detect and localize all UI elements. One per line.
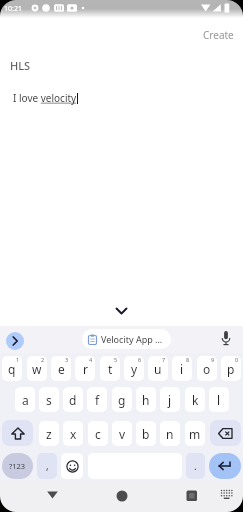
button[interactable]: u	[148, 356, 168, 381]
button[interactable]	[182, 487, 202, 505]
button[interactable]: q	[2, 356, 22, 381]
button[interactable]: Velocity App ...	[82, 329, 171, 349]
button[interactable]: l	[209, 387, 229, 412]
staticText: Create	[203, 28, 234, 42]
button[interactable]: r	[75, 356, 95, 381]
button[interactable]: o	[197, 356, 217, 381]
staticText: 8	[186, 356, 190, 363]
staticText: l	[217, 392, 221, 408]
button[interactable]: I love velocity	[13, 91, 77, 105]
staticText: f	[95, 392, 100, 408]
staticText: 7	[162, 356, 166, 363]
button[interactable]: ?123	[2, 453, 33, 479]
staticText: .	[194, 459, 197, 473]
staticText: g	[118, 392, 126, 408]
button[interactable]	[209, 453, 241, 479]
staticText: t	[108, 361, 113, 377]
button[interactable]	[218, 487, 236, 503]
staticText: s	[46, 392, 52, 408]
staticText: y	[131, 361, 138, 377]
staticText: m	[189, 426, 201, 442]
button[interactable]: Create	[200, 26, 238, 42]
staticText: 9	[211, 356, 215, 363]
staticText: p	[227, 361, 235, 377]
button[interactable]	[112, 303, 131, 318]
button[interactable]: s	[39, 387, 59, 412]
staticText: c	[95, 426, 101, 442]
button[interactable]: b	[136, 421, 156, 446]
button[interactable]	[42, 487, 63, 505]
staticText: z	[46, 426, 52, 442]
button[interactable]: c	[88, 421, 108, 446]
staticText: w	[32, 361, 42, 377]
staticText: 0	[235, 356, 239, 363]
button[interactable]: e	[51, 356, 71, 381]
staticText: v	[119, 426, 126, 442]
staticText: ?123	[9, 461, 26, 471]
button[interactable]: z	[39, 421, 59, 446]
button[interactable]	[6, 332, 24, 350]
button[interactable]: v	[112, 421, 132, 446]
staticText: h	[142, 392, 150, 408]
button[interactable]	[112, 487, 132, 505]
button[interactable]: p	[221, 356, 241, 381]
button[interactable]: ,	[37, 453, 57, 479]
staticText: 6	[138, 356, 142, 363]
button[interactable]: h	[136, 387, 156, 412]
staticText: n	[166, 426, 174, 442]
button[interactable]: w	[27, 356, 47, 381]
button[interactable]: f	[87, 387, 107, 412]
button[interactable]: n	[160, 421, 180, 446]
button[interactable]	[2, 420, 33, 446]
staticText: I love velocity	[13, 91, 77, 105]
staticText: 4	[89, 356, 93, 363]
staticText: i	[180, 361, 184, 377]
staticText: d	[69, 392, 77, 408]
staticText: HLS	[10, 58, 31, 73]
button[interactable]: y	[124, 356, 144, 381]
staticText: Velocity App ...	[101, 333, 163, 345]
staticText: q	[8, 361, 16, 377]
staticText: k	[192, 392, 199, 408]
button[interactable]: x	[63, 421, 83, 446]
button[interactable]	[218, 329, 234, 349]
staticText: 10:21	[4, 4, 22, 14]
staticText: o	[203, 361, 211, 377]
button[interactable]: .	[186, 453, 205, 479]
staticText: r	[83, 361, 88, 377]
button[interactable]: m	[185, 421, 205, 446]
button[interactable]: j	[160, 387, 180, 412]
button[interactable]: k	[185, 387, 205, 412]
staticText: b	[142, 426, 150, 442]
staticText: u	[154, 361, 162, 377]
staticText: a	[22, 392, 29, 408]
button[interactable]: i	[172, 356, 192, 381]
staticText: 3	[65, 356, 69, 363]
staticText: 5	[114, 356, 118, 363]
staticText: j	[168, 392, 172, 408]
button[interactable]: d	[63, 387, 83, 412]
button[interactable]	[210, 420, 241, 446]
staticText: e	[58, 361, 65, 377]
button[interactable]: a	[15, 387, 35, 412]
staticText: 1	[16, 356, 20, 363]
staticText: x	[70, 426, 77, 442]
button[interactable]	[61, 453, 83, 479]
button[interactable]: t	[100, 356, 120, 381]
staticText: ,	[46, 459, 49, 473]
staticText: 2	[41, 356, 45, 363]
button[interactable]: g	[112, 387, 132, 412]
